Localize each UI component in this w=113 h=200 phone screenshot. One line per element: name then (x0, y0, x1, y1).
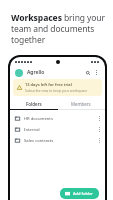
button[interactable]: Search (84, 69, 92, 77)
button[interactable]: Add folder (60, 188, 99, 199)
staticText: Members (71, 101, 91, 107)
button[interactable]: HR documents (10, 113, 105, 124)
button[interactable]: Folders (10, 99, 57, 109)
staticText: Agrello (27, 69, 45, 76)
staticText: 13 days left for free trial (25, 82, 72, 87)
button[interactable]: Sales contracts (10, 135, 105, 146)
staticText: HR documents (24, 116, 53, 122)
staticText: Add folder (73, 191, 94, 196)
staticText: Internal (24, 127, 40, 133)
button[interactable]: Members (57, 99, 105, 109)
staticText: Workspaces bring your team and documents… (11, 12, 105, 45)
staticText: Folders (26, 101, 42, 107)
button[interactable]: Internal (10, 124, 105, 135)
button[interactable]: More options (92, 69, 100, 77)
button[interactable]: Account (15, 69, 23, 77)
staticText: Subscribe now to keep your workspace (25, 88, 88, 93)
button[interactable]: 13 days left for free trial (13, 79, 102, 96)
staticText: Sales contracts (24, 138, 54, 144)
